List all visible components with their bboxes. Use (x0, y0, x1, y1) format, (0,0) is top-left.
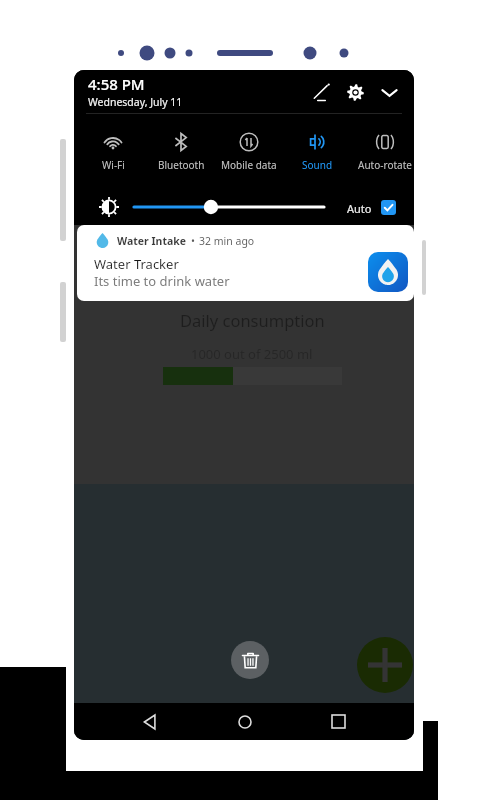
staticText: Its time to drink water (94, 272, 230, 290)
button[interactable]: Bluetooth (147, 132, 215, 172)
button[interactable]: Mobile data (215, 132, 283, 172)
button[interactable]: Recents (320, 703, 357, 740)
button[interactable]: Wi-Fi (79, 132, 147, 172)
staticText: 1000 out of 2500 ml (191, 345, 313, 363)
staticText: 4:58 PM (88, 74, 145, 94)
button[interactable]: Water Intake (77, 225, 414, 301)
button[interactable]: Home (226, 703, 263, 740)
button[interactable]: Expand (372, 75, 406, 109)
button[interactable]: Delete (231, 641, 269, 679)
button[interactable]: Back (131, 703, 168, 740)
staticText: Auto (347, 201, 372, 216)
button[interactable]: Edit (304, 75, 338, 109)
staticText: Wi-Fi (102, 158, 125, 172)
staticText: 32 min ago (199, 234, 255, 248)
staticText: Bluetooth (158, 158, 205, 172)
staticText: Water Tracker (94, 255, 179, 273)
staticText: Water Intake (117, 234, 187, 248)
button[interactable]: Brightness (99, 197, 119, 217)
staticText: Daily consumption (180, 309, 325, 331)
staticText: Sound (302, 158, 333, 172)
button[interactable]: Auto brightness (381, 200, 396, 215)
button[interactable]: Sound (283, 132, 351, 172)
staticText: Mobile data (221, 158, 277, 172)
staticText: • (191, 234, 195, 248)
staticText: Auto-rotate (358, 158, 412, 172)
button[interactable]: Auto-rotate (351, 132, 414, 172)
button[interactable]: Add water (357, 637, 413, 693)
staticText: Wednesday, July 11 (88, 95, 183, 109)
button[interactable]: Settings (338, 75, 372, 109)
